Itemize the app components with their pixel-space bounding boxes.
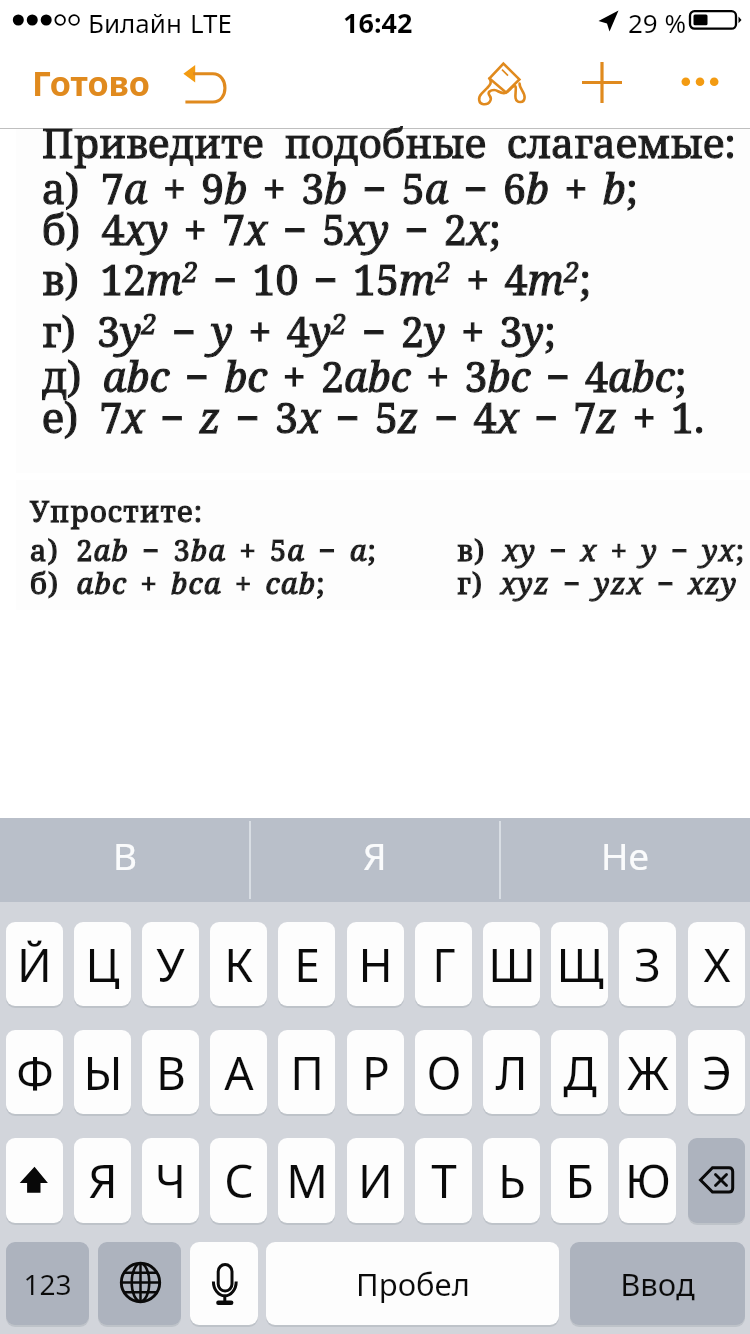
button[interactable]: Не bbox=[500, 818, 750, 902]
staticText: Р bbox=[362, 1041, 390, 1104]
staticText: Приведите подобные слагаемые: bbox=[42, 115, 736, 169]
button[interactable]: А bbox=[210, 1030, 267, 1114]
staticText: Х bbox=[703, 933, 731, 996]
staticText: Ы bbox=[83, 1041, 123, 1104]
staticText: М bbox=[286, 1149, 328, 1212]
staticText: г) 3y2 − y + 4y2 − 2y + 3y; bbox=[42, 303, 556, 359]
button[interactable]: Т bbox=[415, 1138, 472, 1223]
button[interactable]: Ж bbox=[619, 1030, 676, 1114]
staticText: 123 bbox=[23, 1265, 72, 1303]
button[interactable]: Ы bbox=[74, 1030, 131, 1114]
staticText: З bbox=[634, 933, 661, 996]
button[interactable]: Пробел bbox=[266, 1242, 559, 1325]
staticText: Т bbox=[431, 1149, 457, 1212]
button[interactable]: Ш bbox=[483, 922, 540, 1006]
staticText: Ч bbox=[155, 1149, 186, 1212]
staticText: Ь bbox=[498, 1149, 526, 1212]
button[interactable]: Х bbox=[688, 922, 745, 1006]
staticText: Готово bbox=[32, 60, 150, 106]
button[interactable]: З bbox=[619, 922, 676, 1006]
staticText: Г bbox=[432, 933, 456, 996]
staticText: г) xyz − yzx − xzy bbox=[457, 563, 738, 602]
staticText: П bbox=[290, 1041, 324, 1104]
button[interactable]: Щ bbox=[551, 922, 608, 1006]
button[interactable]: У bbox=[142, 922, 199, 1006]
staticText: И bbox=[358, 1149, 393, 1212]
staticText: Э bbox=[702, 1041, 732, 1104]
button[interactable]: Е bbox=[278, 922, 335, 1006]
staticText: а) 2ab − 3ba + 5a − a; bbox=[30, 530, 378, 569]
staticText: 16:42 bbox=[343, 4, 413, 41]
button[interactable]: Ю bbox=[619, 1138, 676, 1223]
staticText: Упростите: bbox=[30, 491, 204, 530]
button[interactable]: Б bbox=[551, 1138, 608, 1223]
staticText: Билайн bbox=[88, 5, 182, 40]
button[interactable]: Д bbox=[551, 1030, 608, 1114]
staticText: Д bbox=[563, 1041, 597, 1104]
staticText: Пробел bbox=[356, 1263, 470, 1305]
staticText: Й bbox=[17, 933, 52, 996]
staticText: Л bbox=[495, 1041, 528, 1104]
button[interactable]: Backspace bbox=[688, 1138, 745, 1223]
button[interactable]: Ф bbox=[6, 1030, 63, 1114]
button[interactable]: Shift bbox=[6, 1138, 63, 1223]
staticText: Ф bbox=[16, 1041, 54, 1104]
staticText: Б bbox=[565, 1149, 594, 1212]
button[interactable]: К bbox=[210, 922, 267, 1006]
staticText: а) 7a + 9b + 3b − 5a − 6b + b; bbox=[42, 160, 638, 216]
staticText: б) 4xy + 7x − 5xy − 2x; bbox=[42, 201, 501, 257]
staticText: Е bbox=[294, 933, 320, 996]
button[interactable]: Я bbox=[74, 1138, 131, 1223]
button[interactable]: Undo bbox=[172, 44, 244, 116]
button[interactable]: Л bbox=[483, 1030, 540, 1114]
button[interactable]: Г bbox=[415, 922, 472, 1006]
staticText: С bbox=[224, 1149, 254, 1212]
button[interactable]: Change keyboard language bbox=[98, 1242, 181, 1325]
button[interactable]: Brush bbox=[472, 52, 532, 112]
button[interactable]: В bbox=[142, 1030, 199, 1114]
staticText: е) 7x − z − 3x − 5z − 4x − 7z + 1. bbox=[42, 389, 705, 445]
staticText: а) 7a + 9b + 3b − 5a − 6b + b; bbox=[42, 160, 638, 216]
staticText: в) xy − x + y − yx; bbox=[457, 530, 746, 569]
button[interactable]: Я bbox=[250, 818, 500, 902]
button[interactable]: Й bbox=[6, 922, 63, 1006]
button[interactable]: Н bbox=[347, 922, 404, 1006]
staticText: Ввод bbox=[620, 1263, 695, 1305]
staticText: Приведите подобные слагаемые: bbox=[42, 115, 736, 169]
button[interactable]: С bbox=[210, 1138, 267, 1223]
staticText: Я bbox=[363, 830, 387, 880]
button[interactable]: Э bbox=[688, 1030, 745, 1114]
button[interactable]: Ц bbox=[74, 922, 131, 1006]
staticText: е) 7x − z − 3x − 5z − 4x − 7z + 1. bbox=[42, 389, 705, 445]
staticText: Я bbox=[88, 1149, 118, 1212]
staticText: В bbox=[156, 1041, 186, 1104]
button[interactable]: П bbox=[278, 1030, 335, 1114]
staticText: д) abc − bc + 2abc + 3bc − 4abc; bbox=[42, 348, 687, 404]
staticText: б) abc + bca + cab; bbox=[30, 563, 326, 602]
button[interactable]: О bbox=[415, 1030, 472, 1114]
staticText: Ж bbox=[627, 1041, 669, 1104]
staticText: В bbox=[113, 830, 138, 880]
button[interactable]: В bbox=[0, 818, 250, 902]
staticText: д) abc − bc + 2abc + 3bc − 4abc; bbox=[42, 348, 687, 404]
staticText: А bbox=[224, 1041, 254, 1104]
button[interactable]: More options bbox=[658, 53, 742, 111]
button[interactable]: Готово bbox=[14, 50, 168, 116]
staticText: в) 12m2 − 10 − 15m2 + 4m2; bbox=[42, 251, 592, 307]
button[interactable]: Ч bbox=[142, 1138, 199, 1223]
button[interactable]: 123 bbox=[6, 1242, 89, 1325]
staticText: Не bbox=[601, 830, 649, 880]
button[interactable]: Ь bbox=[483, 1138, 540, 1223]
button[interactable]: Ввод bbox=[570, 1242, 745, 1325]
staticText: в) xy − x + y − yx; bbox=[457, 530, 746, 569]
button[interactable]: Р bbox=[347, 1030, 404, 1114]
staticText: г) 3y2 − y + 4y2 − 2y + 3y; bbox=[42, 303, 556, 359]
staticText: а) 2ab − 3ba + 5a − a; bbox=[30, 530, 378, 569]
button[interactable]: М bbox=[278, 1138, 335, 1223]
button[interactable]: И bbox=[347, 1138, 404, 1223]
staticText: Упростите: bbox=[30, 491, 204, 530]
staticText: У bbox=[156, 933, 185, 996]
button[interactable]: Dictation bbox=[190, 1242, 258, 1325]
staticText: К bbox=[224, 933, 253, 996]
button[interactable]: Add bbox=[572, 53, 632, 111]
